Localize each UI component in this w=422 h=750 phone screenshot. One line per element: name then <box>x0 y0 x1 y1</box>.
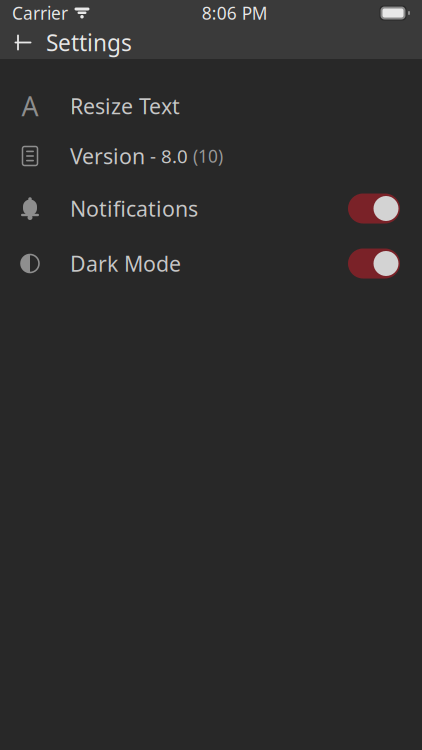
staticText: Notifications <box>70 194 198 223</box>
staticText: Dark Mode <box>70 249 181 278</box>
staticText: A <box>21 88 38 124</box>
staticText: Resize Text <box>70 92 180 120</box>
button[interactable]: Dark Mode <box>0 236 422 291</box>
staticText: Carrier <box>12 1 68 24</box>
button[interactable]: A <box>0 81 422 131</box>
staticText: 8:06 PM <box>202 1 268 24</box>
staticText: - 8.0 <box>145 144 188 168</box>
staticText: Version <box>70 142 145 170</box>
staticText: (10) <box>188 144 223 167</box>
button[interactable]: Version <box>0 131 422 181</box>
button[interactable]: Back <box>0 26 422 59</box>
staticText: Settings <box>46 27 132 57</box>
button[interactable]: Notifications <box>0 181 422 236</box>
